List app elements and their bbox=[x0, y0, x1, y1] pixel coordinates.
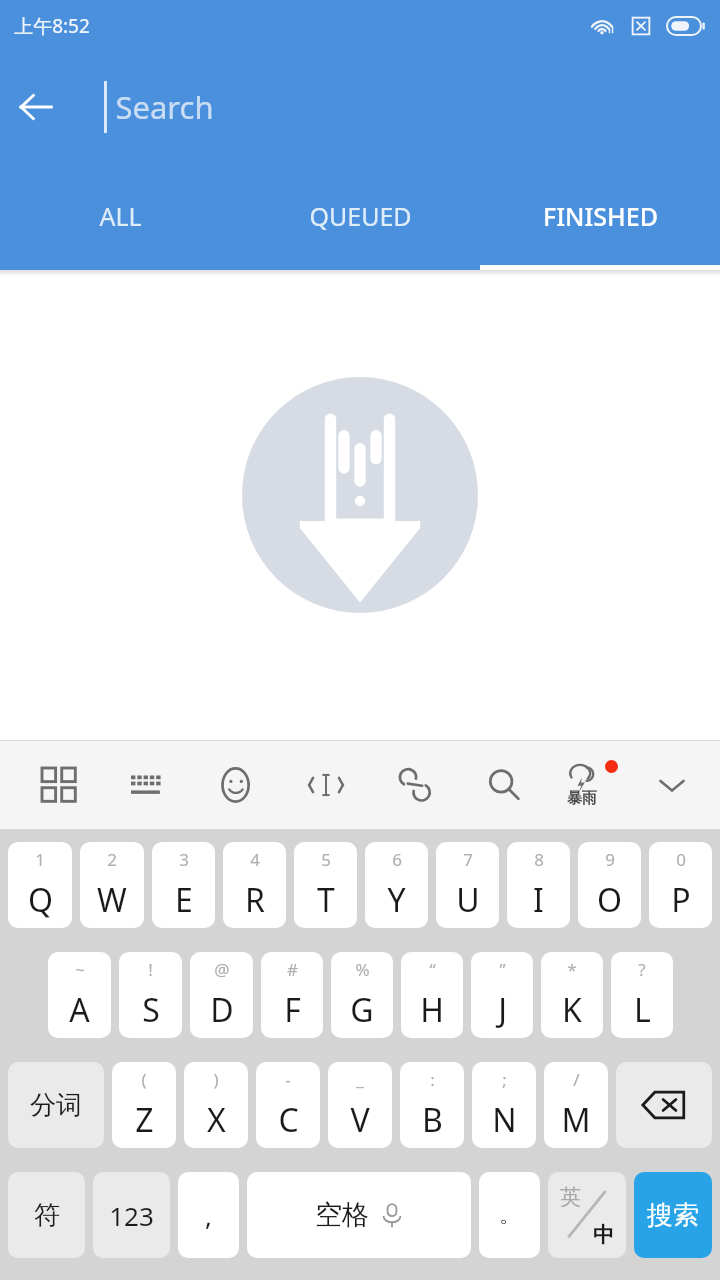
button[interactable]: QUEUED bbox=[240, 162, 480, 270]
button[interactable]: ! bbox=[119, 952, 182, 1038]
staticText: I bbox=[533, 878, 544, 922]
button[interactable]: 5 bbox=[294, 842, 357, 928]
staticText: N bbox=[492, 1098, 517, 1142]
staticText: ~ bbox=[75, 958, 85, 981]
staticText: F bbox=[284, 988, 301, 1032]
staticText: V bbox=[350, 1098, 370, 1142]
staticText: U bbox=[456, 878, 480, 922]
staticText: 符 bbox=[34, 1199, 60, 1232]
button[interactable]: ? bbox=[611, 952, 673, 1038]
button[interactable]: “ bbox=[401, 952, 463, 1038]
button[interactable]: ) bbox=[184, 1062, 248, 1148]
staticText: O bbox=[597, 878, 622, 922]
button[interactable]: - bbox=[256, 1062, 320, 1148]
staticText: G bbox=[350, 988, 374, 1032]
button[interactable]: 4 bbox=[223, 842, 286, 928]
staticText: W bbox=[97, 878, 127, 922]
staticText: ; bbox=[502, 1068, 507, 1091]
staticText: 4 bbox=[250, 848, 260, 871]
button[interactable]: Backspace bbox=[616, 1062, 712, 1148]
staticText: 上午8:52 bbox=[14, 13, 90, 39]
staticText: @ bbox=[214, 958, 230, 981]
staticText: , bbox=[205, 1198, 212, 1233]
button[interactable]: 7 bbox=[436, 842, 499, 928]
staticText: 3 bbox=[179, 848, 189, 871]
button[interactable]: 符 bbox=[8, 1172, 85, 1258]
button[interactable]: 空格 bbox=[247, 1172, 471, 1258]
button[interactable]: Emoji bbox=[192, 740, 281, 830]
button[interactable]: Search bbox=[459, 740, 548, 830]
button[interactable]: * bbox=[541, 952, 603, 1038]
staticText: _ bbox=[356, 1068, 364, 1091]
button[interactable]: % bbox=[331, 952, 393, 1038]
button[interactable]: ” bbox=[471, 952, 533, 1038]
staticText: 分词 bbox=[30, 1089, 82, 1122]
button[interactable]: Search bbox=[115, 52, 720, 162]
staticText: 0 bbox=[676, 848, 686, 871]
staticText: Z bbox=[135, 1098, 154, 1142]
button[interactable]: ; bbox=[472, 1062, 536, 1148]
staticText: 。 bbox=[499, 1201, 521, 1229]
staticText: * bbox=[567, 958, 577, 981]
button[interactable]: Back bbox=[0, 71, 72, 143]
button[interactable]: _ bbox=[328, 1062, 392, 1148]
staticText: ? bbox=[638, 958, 646, 981]
staticText: R bbox=[245, 878, 265, 922]
staticText: S bbox=[142, 988, 160, 1032]
staticText: ” bbox=[499, 958, 506, 981]
button[interactable]: # bbox=[261, 952, 323, 1038]
staticText: 1 bbox=[35, 848, 45, 871]
button[interactable]: @ bbox=[190, 952, 253, 1038]
button[interactable]: 9 bbox=[578, 842, 641, 928]
staticText: 8 bbox=[534, 848, 544, 871]
button[interactable]: , bbox=[178, 1172, 239, 1258]
staticText: 2 bbox=[107, 848, 117, 871]
staticText: ALL bbox=[99, 199, 142, 233]
staticText: K bbox=[562, 988, 582, 1032]
button[interactable]: / bbox=[544, 1062, 608, 1148]
button[interactable]: 2 bbox=[80, 842, 144, 928]
button[interactable]: 分词 bbox=[8, 1062, 104, 1148]
staticText: 9 bbox=[605, 848, 615, 871]
staticText: 搜索 bbox=[647, 1199, 699, 1232]
button[interactable]: Grid bbox=[14, 740, 103, 830]
staticText: T bbox=[317, 878, 335, 922]
staticText: 5 bbox=[321, 848, 331, 871]
button[interactable]: 6 bbox=[365, 842, 428, 928]
button[interactable]: ALL bbox=[0, 162, 240, 270]
button[interactable]: Switch language bbox=[548, 1172, 626, 1258]
staticText: D bbox=[210, 988, 234, 1032]
staticText: ! bbox=[148, 958, 153, 981]
button[interactable]: : bbox=[400, 1062, 464, 1148]
staticText: Y bbox=[387, 878, 406, 922]
staticText: # bbox=[287, 958, 298, 981]
button[interactable]: Keyboard bbox=[103, 740, 192, 830]
staticText: ( bbox=[141, 1068, 147, 1091]
staticText: - bbox=[285, 1068, 291, 1091]
button[interactable]: Weather bbox=[548, 740, 637, 830]
button[interactable]: Clipboard bbox=[370, 740, 459, 830]
staticText: 7 bbox=[463, 848, 473, 871]
staticText: C bbox=[278, 1098, 299, 1142]
button[interactable]: 123 bbox=[93, 1172, 170, 1258]
button[interactable]: ( bbox=[112, 1062, 176, 1148]
staticText: Search bbox=[115, 86, 214, 128]
button[interactable]: 1 bbox=[8, 842, 72, 928]
button[interactable]: 。 bbox=[479, 1172, 540, 1258]
staticText: E bbox=[175, 878, 193, 922]
staticText: : bbox=[430, 1068, 435, 1091]
staticText: / bbox=[573, 1068, 580, 1091]
button[interactable]: 0 bbox=[649, 842, 712, 928]
button[interactable]: 8 bbox=[507, 842, 570, 928]
staticText: QUEUED bbox=[309, 199, 412, 233]
staticText: M bbox=[561, 1098, 591, 1142]
staticText: 6 bbox=[392, 848, 402, 871]
button[interactable]: FINISHED bbox=[480, 162, 720, 270]
staticText: A bbox=[69, 988, 90, 1032]
button[interactable]: 搜索 bbox=[634, 1172, 712, 1258]
button[interactable]: Edit text bbox=[281, 740, 370, 830]
button[interactable]: 3 bbox=[152, 842, 215, 928]
staticText: B bbox=[422, 1098, 443, 1142]
button[interactable]: Collapse keyboard bbox=[637, 740, 706, 830]
button[interactable]: ~ bbox=[48, 952, 111, 1038]
